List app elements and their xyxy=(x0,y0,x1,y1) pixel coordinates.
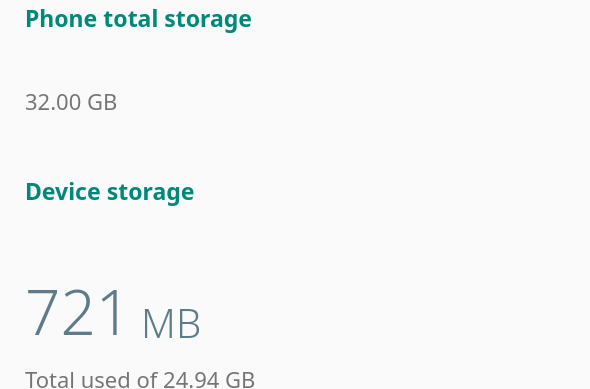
button[interactable]: Phone total storage xyxy=(25,2,252,33)
button[interactable]: 32.00 GB xyxy=(25,86,118,116)
button[interactable]: Device storage xyxy=(25,175,195,206)
staticText: MB xyxy=(141,295,202,349)
staticText: 721 xyxy=(25,269,132,353)
button[interactable]: Total used of 24.94 GB xyxy=(25,364,256,389)
button[interactable]: 721 xyxy=(25,269,202,353)
